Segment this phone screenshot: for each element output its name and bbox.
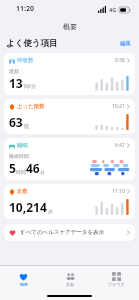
staticText: 上った階数: [17, 103, 45, 110]
staticText: ブラウズ: [108, 282, 125, 287]
staticText: 5: [9, 160, 16, 176]
staticText: 46: [26, 160, 40, 176]
button[interactable]: ブラウズ: [93, 266, 139, 292]
button[interactable]: 睡眠: [4, 138, 135, 180]
staticText: 歩: [48, 208, 53, 214]
staticText: 歩数: [17, 188, 28, 195]
button[interactable]: 上った階数: [4, 99, 135, 134]
staticText: 概要: [20, 282, 28, 287]
staticText: 13: [9, 75, 23, 91]
staticText: 睡眠時間: [9, 153, 29, 159]
staticText: 呼吸数: [17, 57, 34, 64]
staticText: 最新: [9, 68, 19, 74]
staticText: 回/分: [24, 83, 36, 90]
staticText: 10:21: [112, 103, 125, 110]
staticText: 編集: [120, 40, 131, 47]
staticText: 11:10: [112, 188, 125, 195]
staticText: 睡眠: [17, 142, 28, 149]
staticText: 階: [24, 123, 29, 129]
staticText: 6:47: [115, 142, 125, 149]
staticText: 時間: [16, 169, 26, 175]
staticText: 4G: [109, 6, 117, 13]
staticText: よく使う項目: [6, 38, 58, 49]
staticText: すべてのヘルスケアデータを表示: [20, 229, 105, 236]
button[interactable]: 共有: [47, 266, 93, 292]
staticText: 63: [9, 114, 23, 130]
button[interactable]: 編集: [118, 39, 133, 48]
button[interactable]: 概要: [0, 266, 47, 292]
staticText: 共有: [66, 282, 74, 287]
staticText: 分: [40, 169, 45, 175]
staticText: 概要: [63, 22, 77, 31]
staticText: 6:58: [115, 57, 125, 64]
staticText: 11:20: [16, 4, 34, 14]
button[interactable]: 呼吸数: [4, 53, 135, 95]
button[interactable]: 歩数: [4, 184, 135, 219]
button[interactable]: すべてのヘルスケアデータを表示: [4, 224, 135, 241]
staticText: 10,214: [9, 199, 47, 215]
